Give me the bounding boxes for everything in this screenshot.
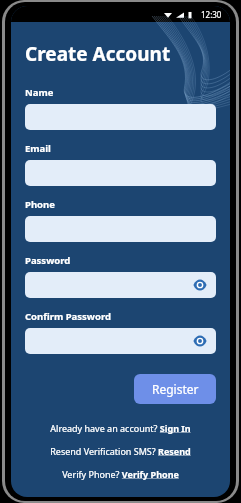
- staticText: Name: [25, 86, 54, 99]
- button[interactable]: Show password: [192, 277, 208, 293]
- button[interactable]: Verify Phone? Verify Phone: [25, 468, 216, 480]
- staticText: Create Account: [25, 41, 171, 67]
- staticText: Phone: [25, 198, 55, 211]
- button[interactable]: Already have an account? Sign In: [25, 422, 216, 434]
- staticText: Password: [25, 254, 71, 267]
- button[interactable]: Show password: [25, 328, 216, 354]
- staticText: Verify Phone? Verify Phone: [62, 468, 179, 480]
- staticText: Email: [25, 142, 51, 155]
- button[interactable]: [25, 216, 216, 242]
- button[interactable]: Show password: [192, 333, 208, 349]
- button[interactable]: Resend Verification SMS? Resend: [25, 445, 216, 457]
- button[interactable]: [25, 104, 216, 130]
- staticText: 12:30: [201, 9, 222, 20]
- staticText: Register: [152, 381, 199, 397]
- button[interactable]: Show password: [25, 272, 216, 298]
- button[interactable]: Register: [134, 374, 216, 404]
- staticText: Already have an account? Sign In: [50, 422, 191, 434]
- staticText: Confirm Password: [25, 310, 111, 323]
- staticText: Resend Verification SMS? Resend: [50, 445, 191, 457]
- button[interactable]: [25, 160, 216, 186]
